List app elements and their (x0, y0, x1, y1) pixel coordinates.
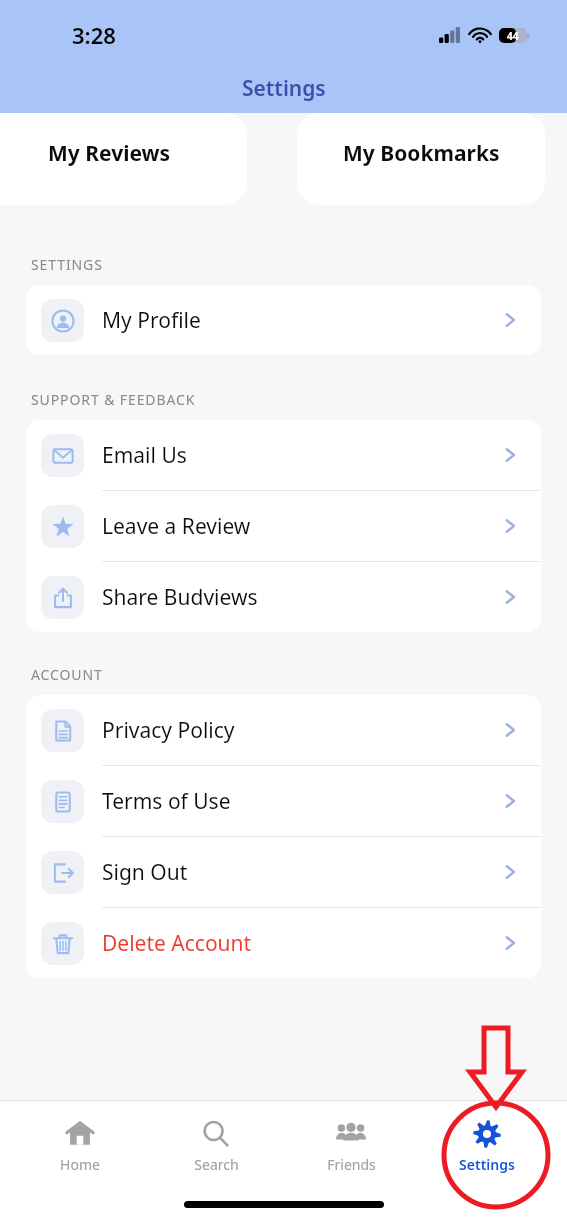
button[interactable]: Terms of Use (26, 766, 541, 836)
staticText: Leave a Review (102, 512, 251, 541)
staticText: Sign Out (102, 858, 188, 887)
staticText: Settings (242, 74, 326, 103)
button[interactable]: Leave a Review (26, 491, 541, 561)
staticText: Share Budviews (102, 583, 258, 612)
staticText: My Bookmarks (343, 139, 500, 168)
staticText: 3:28 (72, 20, 116, 50)
button[interactable]: Privacy Policy (26, 695, 541, 765)
staticText: My Profile (102, 306, 201, 335)
staticText: Home (60, 1155, 100, 1174)
staticText: Email Us (102, 441, 187, 470)
staticText: Delete Account (102, 929, 252, 958)
staticText: Privacy Policy (102, 716, 235, 745)
button[interactable]: Home (25, 1119, 135, 1174)
staticText: SUPPORT & FEEDBACK (31, 390, 196, 409)
button[interactable]: My Profile (26, 285, 541, 355)
button[interactable]: My Bookmarks (297, 113, 545, 205)
button[interactable]: Delete Account (26, 908, 541, 978)
staticText: Friends (327, 1155, 376, 1174)
staticText: Settings (459, 1155, 515, 1174)
staticText: 44 (507, 29, 519, 43)
button[interactable]: Share Budviews (26, 562, 541, 632)
button[interactable]: Settings (432, 1119, 542, 1174)
staticText: SETTINGS (31, 255, 103, 274)
button[interactable]: Sign Out (26, 837, 541, 907)
staticText: Terms of Use (102, 787, 231, 816)
button[interactable]: My Reviews (0, 113, 247, 205)
button[interactable]: Search (161, 1119, 271, 1174)
staticText: ACCOUNT (31, 665, 103, 684)
staticText: Search (194, 1155, 239, 1174)
button[interactable]: Email Us (26, 420, 541, 490)
button[interactable]: Friends (296, 1119, 406, 1174)
staticText: My Reviews (48, 139, 171, 168)
